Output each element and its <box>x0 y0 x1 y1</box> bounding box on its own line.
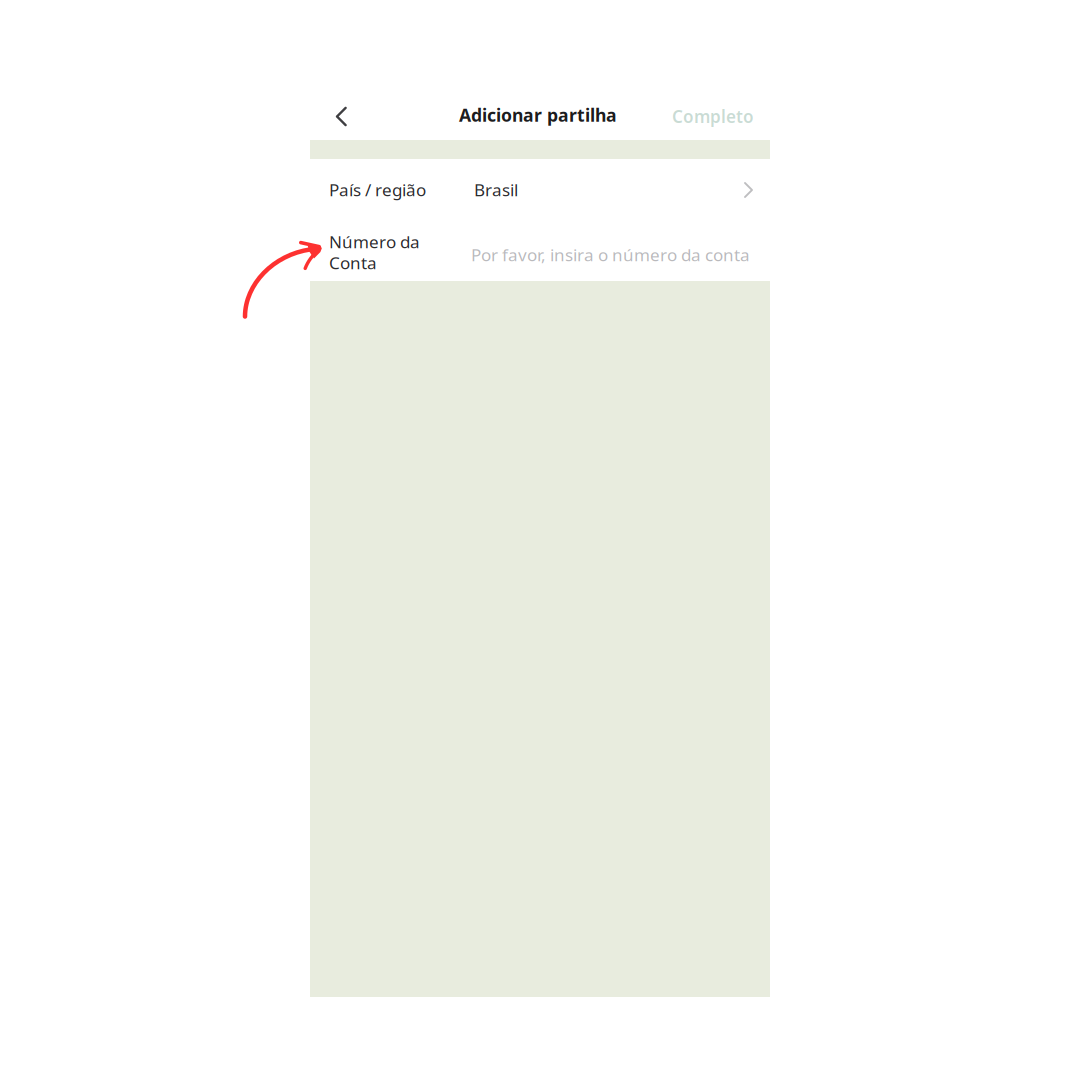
staticText: Adicionar partilha <box>459 103 617 127</box>
staticText: País / região <box>329 178 426 201</box>
staticText: Completo <box>672 105 754 128</box>
button[interactable]: Completo <box>666 93 760 140</box>
staticText: Brasil <box>474 178 518 201</box>
staticText: Número da <box>329 230 420 253</box>
staticText: Por favor, insira o número da conta <box>471 243 750 266</box>
staticText: Conta <box>329 251 377 274</box>
button[interactable]: País / região <box>310 159 770 223</box>
button[interactable]: Número da <box>310 223 770 281</box>
button[interactable]: Back <box>310 93 375 140</box>
